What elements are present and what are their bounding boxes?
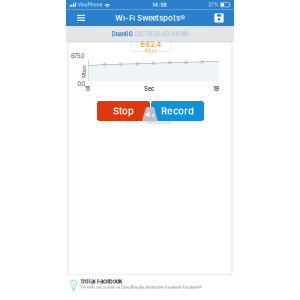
button[interactable]: Stop	[97, 101, 150, 121]
staticText: i	[73, 280, 74, 286]
staticText: 14:58	[152, 1, 166, 8]
staticText: Mbps	[77, 68, 90, 74]
staticText: Doan6G	[112, 31, 133, 38]
button[interactable]: i	[66, 275, 234, 300]
staticText: Tìm kiếm các sự kiện và cộng đồng địa ph…	[80, 285, 201, 289]
staticText: 675.0	[71, 53, 85, 60]
staticText: 682.4	[140, 40, 161, 49]
staticText: 37%	[208, 2, 219, 8]
button[interactable]: Menu	[69, 9, 93, 26]
staticText: 19	[213, 85, 219, 92]
staticText: Mbps	[145, 48, 157, 53]
staticText: Record	[161, 105, 194, 117]
staticText: 0.0	[77, 81, 85, 87]
staticText: Hold to average	[145, 120, 171, 125]
button[interactable]: Save	[207, 9, 231, 26]
staticText: Wi-Fi Sweetspots®	[115, 13, 185, 22]
staticText: (20:76:93:4D:A8:98)	[134, 31, 188, 38]
staticText: Trở lại Facebook	[80, 278, 122, 285]
staticText: Stop	[113, 105, 134, 117]
staticText: Sec	[144, 85, 154, 92]
staticText: VinaPhone	[77, 2, 102, 8]
staticText: 11	[85, 85, 89, 92]
button[interactable]: Record	[151, 101, 204, 121]
button[interactable]: Mute	[142, 107, 158, 121]
